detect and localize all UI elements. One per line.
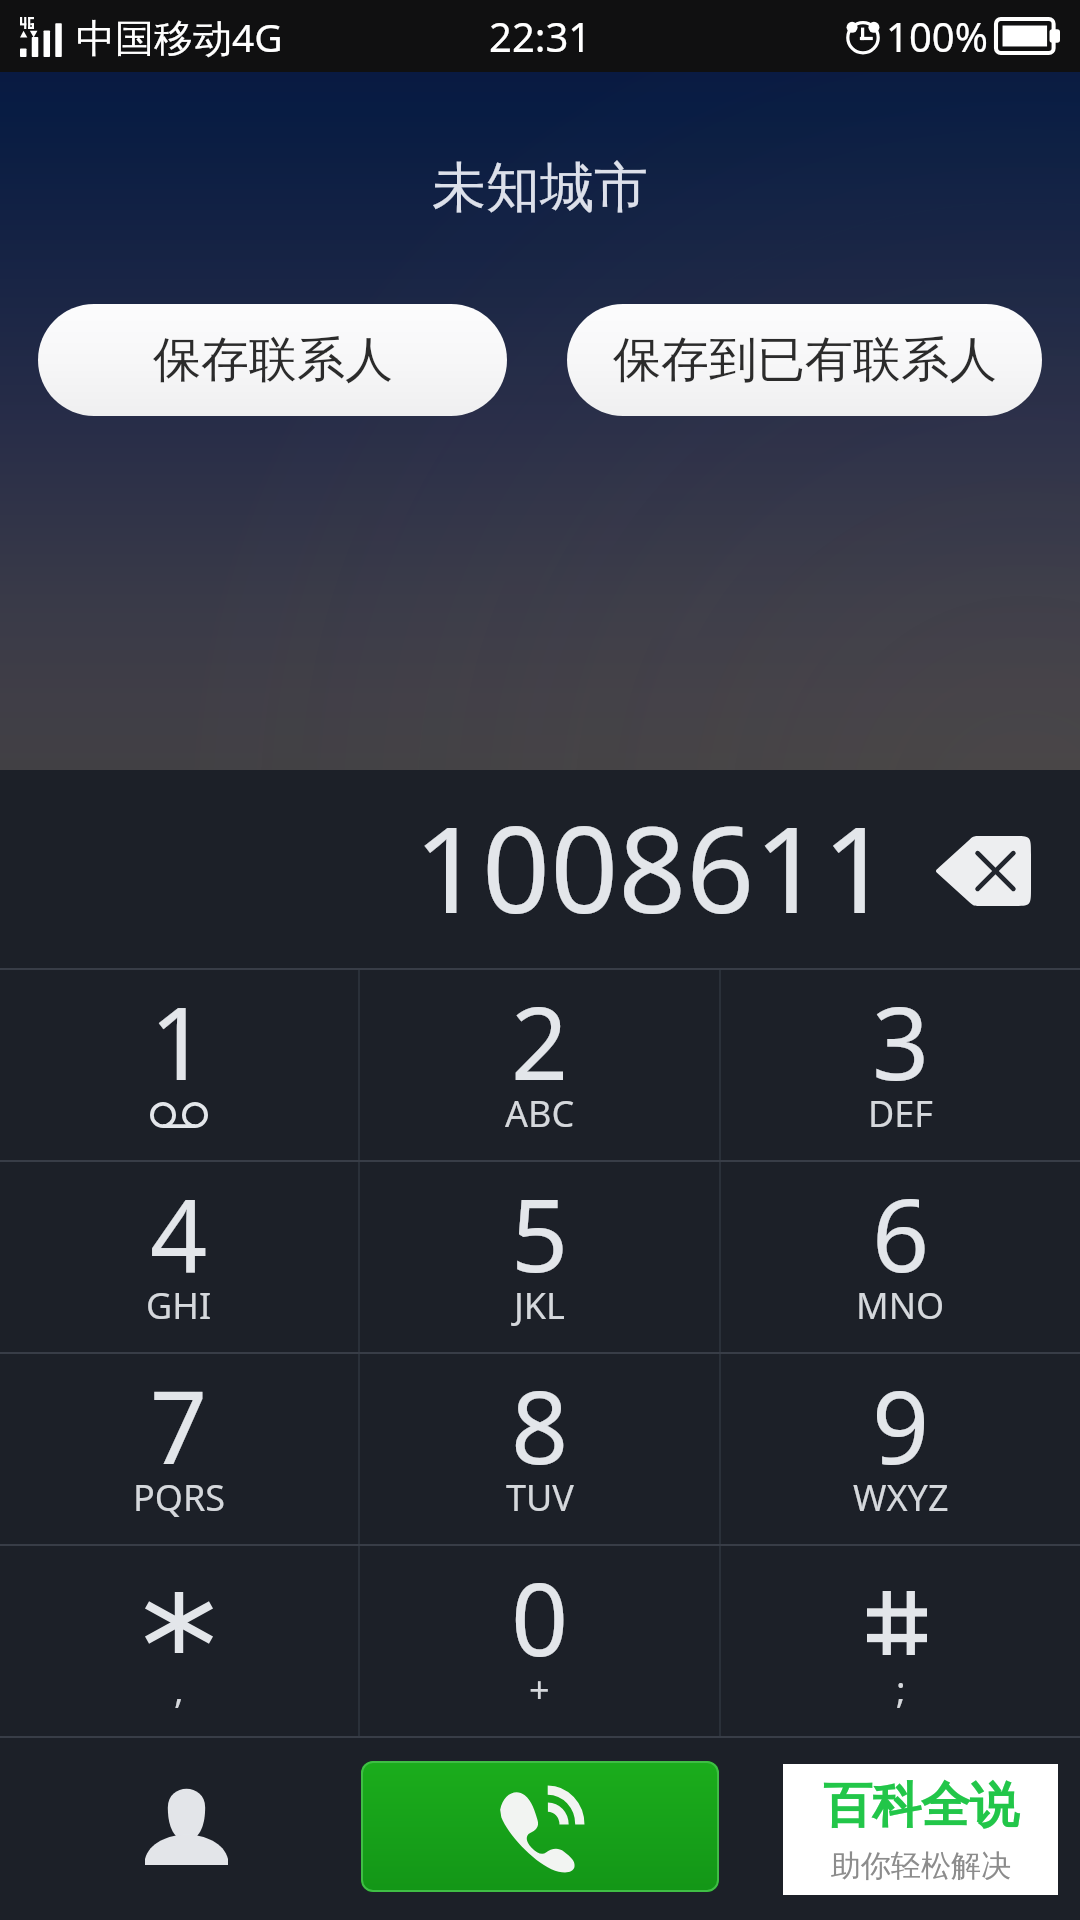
button[interactable]: Delete: [935, 836, 1031, 906]
staticText: 1008611: [414, 786, 891, 948]
button[interactable]: 百科全说: [783, 1764, 1058, 1895]
staticText: +: [529, 1665, 550, 1714]
button[interactable]: ;: [721, 1546, 1080, 1736]
staticText: 百科全说: [823, 1775, 1019, 1837]
staticText: 9: [872, 1357, 930, 1493]
staticText: 22:31: [489, 9, 592, 63]
staticText: 7: [150, 1357, 208, 1493]
staticText: JKL: [514, 1281, 565, 1330]
staticText: ;: [896, 1665, 906, 1714]
staticText: 100%: [886, 9, 988, 63]
staticText: 未知城市: [432, 154, 648, 222]
staticText: 2: [511, 973, 569, 1109]
staticText: 中国移动4G: [76, 10, 283, 63]
staticText: ABC: [505, 1089, 575, 1138]
staticText: 5: [511, 1165, 569, 1301]
button[interactable]: ,: [0, 1546, 358, 1736]
button[interactable]: Call: [361, 1761, 719, 1892]
staticText: 保存联系人: [153, 330, 393, 390]
button[interactable]: 2: [360, 970, 719, 1160]
staticText: 8: [511, 1357, 569, 1493]
staticText: 6: [872, 1165, 930, 1301]
button[interactable]: Contacts: [126, 1762, 246, 1882]
button[interactable]: 保存联系人: [38, 304, 507, 416]
staticText: GHI: [146, 1281, 212, 1330]
staticText: 保存到已有联系人: [613, 330, 997, 390]
staticText: 助你轻松解决: [831, 1847, 1011, 1885]
staticText: DEF: [868, 1089, 933, 1138]
staticText: 3: [872, 973, 930, 1109]
button[interactable]: 4: [0, 1162, 358, 1352]
button[interactable]: 8: [360, 1354, 719, 1544]
staticText: PQRS: [133, 1473, 226, 1522]
button[interactable]: 7: [0, 1354, 358, 1544]
staticText: TUV: [506, 1473, 574, 1522]
button[interactable]: 9: [721, 1354, 1080, 1544]
button[interactable]: 0: [360, 1546, 719, 1736]
staticText: WXYZ: [853, 1473, 949, 1522]
staticText: 0: [511, 1549, 569, 1685]
staticText: MNO: [856, 1281, 945, 1330]
button[interactable]: 6: [721, 1162, 1080, 1352]
button[interactable]: 5: [360, 1162, 719, 1352]
staticText: 1: [150, 973, 208, 1109]
button[interactable]: 1: [0, 970, 358, 1160]
button[interactable]: 保存到已有联系人: [567, 304, 1042, 416]
staticText: 4: [150, 1165, 208, 1301]
button[interactable]: 3: [721, 970, 1080, 1160]
staticText: ,: [174, 1665, 184, 1714]
